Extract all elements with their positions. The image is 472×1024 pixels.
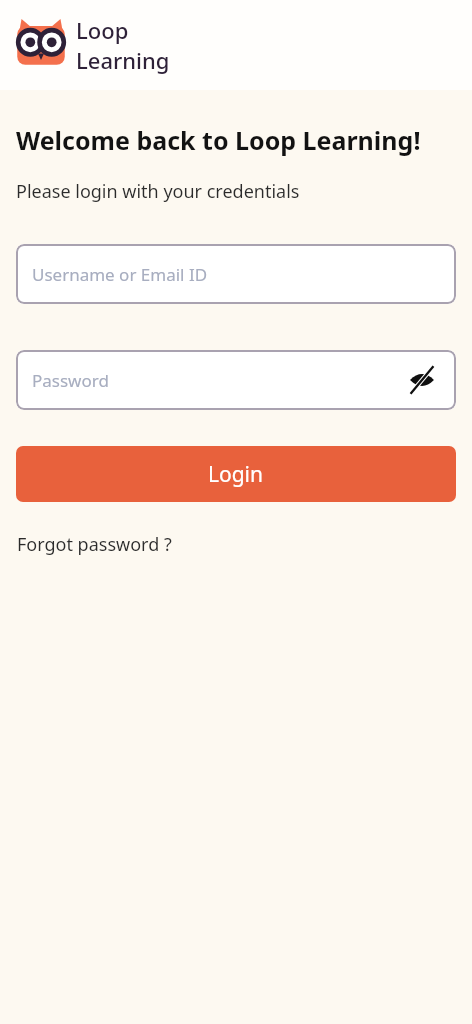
button[interactable]: Show password	[404, 362, 440, 398]
staticText: Learning	[76, 45, 170, 75]
staticText: Loop	[76, 15, 129, 45]
staticText: Username or Email ID	[32, 263, 208, 286]
button[interactable]: Forgot password ?	[16, 530, 173, 559]
button[interactable]: Password	[16, 350, 456, 410]
staticText: Login	[208, 460, 264, 489]
button[interactable]: Username or Email ID	[16, 244, 456, 304]
staticText: Please login with your credentials	[16, 179, 300, 204]
staticText: Forgot password ?	[17, 532, 172, 557]
staticText: Welcome back to Loop Learning!	[16, 123, 421, 157]
button[interactable]: Login	[16, 446, 456, 502]
staticText: Password	[32, 369, 109, 392]
